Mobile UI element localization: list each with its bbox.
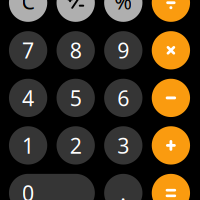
staticText: 3 — [117, 131, 129, 159]
button[interactable]: 6 — [104, 79, 142, 117]
button[interactable]: Plus — [152, 126, 190, 164]
button[interactable]: C — [9, 0, 47, 22]
staticText: 7 — [22, 36, 34, 64]
button[interactable]: Minus — [152, 79, 190, 117]
staticText: . — [120, 179, 126, 200]
staticText: 5 — [70, 84, 82, 112]
button[interactable]: Divide — [152, 0, 190, 22]
button[interactable]: 9 — [104, 31, 142, 69]
staticText: 4 — [22, 84, 34, 112]
staticText: C — [22, 0, 35, 15]
staticText: 6 — [117, 84, 129, 112]
button[interactable]: Plus minus — [57, 0, 95, 22]
button[interactable]: 5 — [57, 79, 95, 117]
button[interactable]: 0 — [9, 174, 95, 200]
button[interactable]: Multiply — [152, 31, 190, 69]
button[interactable]: 7 — [9, 31, 47, 69]
button[interactable]: 3 — [104, 126, 142, 164]
button[interactable]: Equals — [152, 174, 190, 200]
button[interactable]: 4 — [9, 79, 47, 117]
staticText: 8 — [70, 36, 82, 64]
staticText: 2 — [70, 131, 82, 159]
staticText: 9 — [117, 36, 129, 64]
button[interactable]: 8 — [57, 31, 95, 69]
button[interactable]: 1 — [9, 126, 47, 164]
button[interactable]: . — [104, 174, 142, 200]
button[interactable]: 2 — [57, 126, 95, 164]
button[interactable]: % — [104, 0, 142, 22]
staticText: 1 — [22, 131, 34, 159]
staticText: 0 — [22, 179, 34, 200]
staticText: % — [114, 0, 132, 15]
